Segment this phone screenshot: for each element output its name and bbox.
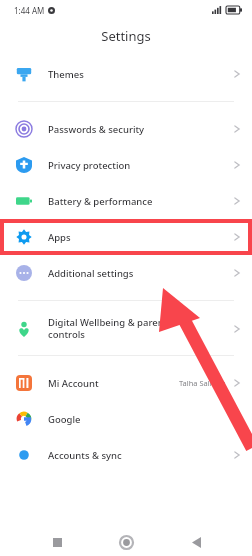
staticText: Privacy protection [48, 159, 234, 172]
button[interactable]: Additional settings [0, 255, 252, 291]
button[interactable]: Passwords & security [0, 111, 252, 147]
staticText: Talha Salman [179, 378, 226, 388]
staticText: Apps [48, 231, 234, 244]
button[interactable]: Battery & performance [0, 183, 252, 219]
button[interactable]: Privacy protection [0, 147, 252, 183]
staticText: Themes [48, 68, 234, 81]
staticText: Mi Account [48, 377, 179, 390]
button[interactable]: Themes [0, 56, 252, 92]
staticText: Google [48, 413, 234, 426]
staticText: 1:44 AM [14, 5, 45, 16]
button[interactable]: Home [113, 529, 139, 555]
button[interactable]: Accounts & sync [0, 437, 252, 473]
button[interactable]: Mi Account [0, 365, 252, 401]
staticText: Digital Wellbeing & parental controls [48, 316, 234, 341]
button[interactable]: Digital Wellbeing & parental controls [0, 310, 252, 346]
staticText: Additional settings [48, 267, 234, 280]
staticText: Settings [101, 27, 151, 45]
button[interactable]: Google [0, 401, 252, 437]
button[interactable]: Recents [44, 529, 70, 555]
button[interactable]: Apps [0, 219, 252, 255]
staticText: Battery & performance [48, 195, 234, 208]
button[interactable]: Back [183, 529, 209, 555]
staticText: Accounts & sync [48, 449, 234, 462]
staticText: Passwords & security [48, 123, 234, 136]
